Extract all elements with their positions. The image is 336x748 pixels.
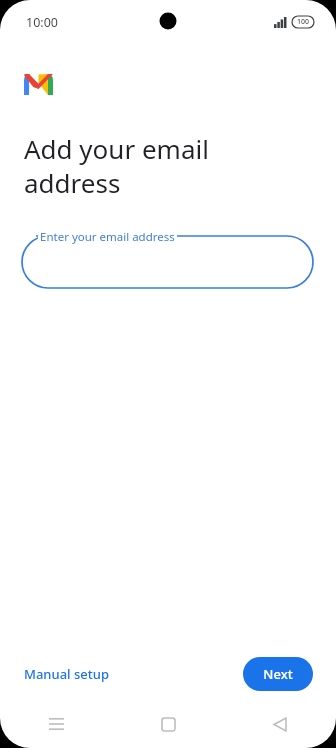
button[interactable]: Home [112,700,224,748]
button[interactable]: Recent apps [0,700,112,748]
staticText: 100 [297,17,310,27]
button[interactable]: Manual setup [14,657,119,691]
staticText: Manual setup [24,665,109,683]
button[interactable]: Enter your email address [22,226,313,288]
button[interactable]: Next [243,657,313,691]
staticText: Add your email address [24,131,209,200]
staticText: Enter your email address [40,229,175,245]
staticText: Next [263,665,293,683]
button[interactable]: Back [224,700,336,748]
staticText: 10:00 [26,14,58,31]
